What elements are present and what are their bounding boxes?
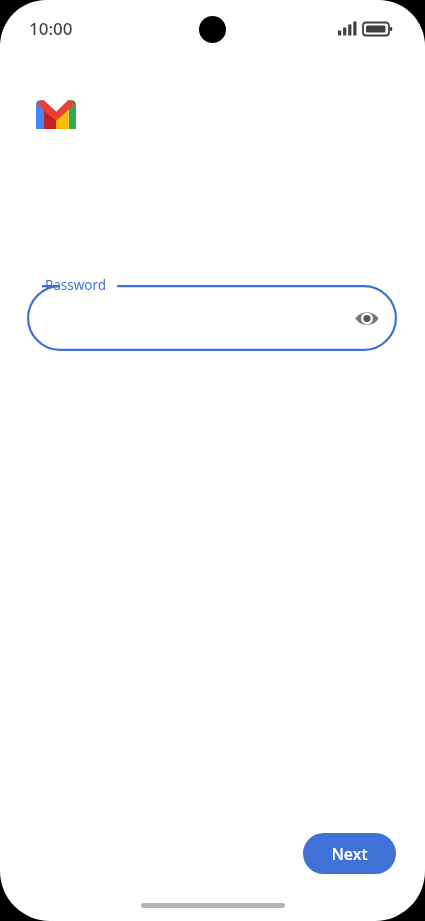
other: Gmail (36, 100, 76, 129)
button[interactable]: Next (303, 833, 396, 874)
staticText: Password (45, 276, 107, 294)
button[interactable]: Password (27, 285, 397, 351)
button[interactable]: Show password (350, 301, 384, 335)
staticText: 10:00 (29, 17, 73, 40)
staticText: Next (331, 843, 368, 865)
